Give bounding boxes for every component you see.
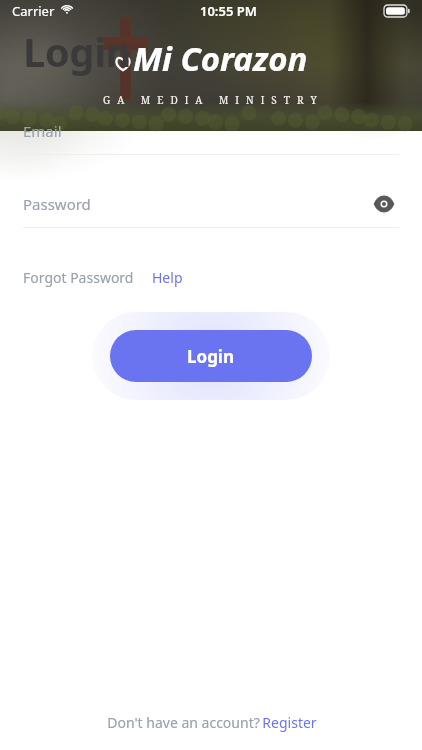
- staticText: Carrier: [12, 2, 55, 20]
- button[interactable]: Login: [110, 330, 312, 382]
- button[interactable]: Password: [23, 194, 399, 228]
- staticText: Email: [23, 121, 62, 141]
- staticText: Password: [23, 194, 91, 214]
- button[interactable]: Show password: [369, 189, 399, 219]
- button[interactable]: Don't have an account?: [23, 713, 399, 750]
- staticText: Help: [152, 268, 183, 287]
- staticText: 10:55 PM: [200, 2, 257, 20]
- staticText: Don't have an account?: [105, 713, 262, 732]
- button[interactable]: Help: [152, 268, 183, 287]
- staticText: Login: [187, 345, 235, 368]
- staticText: Register: [262, 713, 317, 732]
- staticText: Forgot Password: [23, 268, 134, 287]
- staticText: Login: [23, 24, 132, 78]
- staticText: G A M E D I A M I N I S T R Y: [103, 93, 319, 107]
- staticText: Mi Corazon: [133, 36, 308, 81]
- button[interactable]: Email: [23, 121, 399, 155]
- button[interactable]: Forgot Password: [23, 268, 134, 287]
